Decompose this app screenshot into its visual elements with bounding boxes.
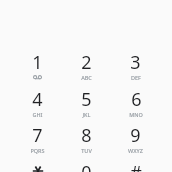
button[interactable]: Dial #: [111, 160, 160, 172]
staticText: JKL: [82, 111, 91, 118]
button[interactable]: Dial 8: [62, 123, 111, 159]
button[interactable]: Dial 0: [62, 160, 111, 172]
button[interactable]: Dial 3: [111, 50, 160, 86]
staticText: MNO: [129, 111, 143, 118]
button[interactable]: Dial 9: [111, 123, 160, 159]
button[interactable]: Dial *: [13, 160, 62, 172]
staticText: TUV: [81, 147, 92, 154]
staticText: 8: [81, 123, 92, 148]
staticText: ABC: [81, 74, 92, 81]
staticText: 2: [81, 50, 92, 75]
staticText: 6: [131, 87, 142, 112]
button[interactable]: Dial 7: [13, 123, 62, 159]
staticText: 0: [81, 160, 92, 172]
staticText: #: [130, 160, 142, 172]
staticText: DEF: [131, 74, 141, 81]
button[interactable]: Dial 6: [111, 87, 160, 123]
staticText: 9: [130, 123, 141, 148]
staticText: GHI: [32, 111, 43, 118]
staticText: 4: [32, 87, 43, 112]
button[interactable]: Dial 1: [13, 50, 62, 86]
staticText: WXYZ: [128, 147, 143, 154]
staticText: 3: [130, 50, 141, 75]
staticText: 5: [81, 87, 92, 112]
button[interactable]: Dial 5: [62, 87, 111, 123]
staticText: PQRS: [30, 147, 45, 154]
staticText: 1: [32, 50, 43, 75]
button[interactable]: Dial 2: [62, 50, 111, 86]
staticText: 7: [32, 123, 43, 148]
button[interactable]: Dial 4: [13, 87, 62, 123]
